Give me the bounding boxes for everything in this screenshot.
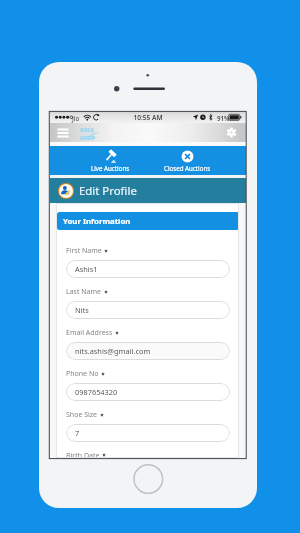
- staticText: Jio: [72, 114, 80, 122]
- button[interactable]: Nits: [66, 301, 230, 319]
- staticText: Your Information: [63, 216, 131, 227]
- staticText: 10:55 AM: [50, 113, 246, 122]
- button[interactable]: Ashis1: [66, 260, 230, 278]
- staticText: SOLE: [80, 126, 94, 134]
- staticText: Phone No: [66, 369, 99, 379]
- button[interactable]: 0987654320: [66, 383, 230, 401]
- button[interactable]: Menu: [54, 124, 72, 142]
- button[interactable]: Closed Auctions: [143, 146, 231, 175]
- staticText: 0987654320: [75, 387, 118, 397]
- staticText: Email Address: [66, 328, 113, 338]
- staticText: Live Auctions: [91, 164, 130, 172]
- button[interactable]: Settings: [225, 126, 238, 139]
- staticText: Last Name: [66, 287, 102, 297]
- button[interactable]: Sole Shop: [80, 123, 100, 142]
- staticText: Edit Profile: [79, 183, 137, 199]
- button[interactable]: 7: [66, 424, 230, 442]
- staticText: Ashis1: [75, 264, 98, 274]
- staticText: Nits: [75, 305, 89, 315]
- staticText: Shoe Size: [66, 410, 98, 420]
- staticText: Closed Auctions: [164, 164, 211, 172]
- staticText: First Name: [66, 246, 102, 256]
- staticText: 7: [75, 428, 80, 438]
- button[interactable]: Live Auctions: [66, 146, 154, 175]
- staticText: Birth Date: [66, 451, 100, 458]
- button[interactable]: nits.ashis@gmail.com: [66, 342, 230, 360]
- staticText: nits.ashis@gmail.com: [75, 346, 151, 356]
- button[interactable]: Edit Profile: [50, 178, 246, 203]
- staticText: SHOP: [80, 134, 96, 142]
- staticText: 91%: [217, 114, 230, 122]
